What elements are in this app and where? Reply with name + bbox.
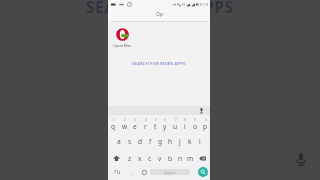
staticText: 6 [164,118,166,122]
button[interactable]: 1 [108,115,119,133]
button[interactable]: 5 [150,115,160,133]
button[interactable]: 7 [170,115,180,133]
staticText: 3 [134,118,136,122]
button[interactable]: c [145,150,155,166]
button[interactable]: h [165,133,175,150]
button[interactable]: 8 [180,115,190,133]
staticText: 8 [184,118,186,122]
button[interactable]: Op [108,8,210,21]
button[interactable]: 3 [130,115,140,133]
button[interactable]: 4 [140,115,150,133]
staticText: b [168,154,173,163]
staticText: h [168,137,173,146]
staticText: n [178,154,183,163]
staticText: a [117,137,121,146]
staticText: g [158,137,163,146]
staticText: k [188,137,192,146]
button[interactable]: k [185,133,195,150]
button[interactable]: Voice input [198,107,205,114]
staticText: 7 [175,118,177,122]
staticText: SEARCH FOR APPS [86,0,234,17]
staticText: ?1ג [114,169,121,175]
button[interactable]: SEARCH FOR MORE APPS [126,57,192,71]
button[interactable]: Emoji [139,165,149,179]
staticText: 5:19 [200,2,208,7]
staticText: 1 [113,118,115,122]
button[interactable]: ?1ג [108,165,127,179]
staticText: y [163,122,167,131]
button[interactable] [116,28,129,41]
staticText: u [173,122,178,131]
staticText: 5 [155,118,157,122]
button[interactable]: 0 [200,115,210,133]
button[interactable]: s [124,133,135,150]
button[interactable]: v [155,150,165,166]
button[interactable]: Backspace [195,150,210,166]
staticText: w [122,122,128,131]
button[interactable]: g [155,133,165,150]
staticText: j [179,137,181,146]
staticText: 9 [194,118,196,122]
button[interactable]: Space [150,169,190,175]
button[interactable]: z [124,150,135,166]
staticText: i [184,122,186,131]
button[interactable]: b [165,150,175,166]
staticText: o [193,122,197,131]
staticText: English [164,170,176,175]
staticText: c [148,154,152,163]
staticText: l [199,137,201,146]
button[interactable]: f [145,133,155,150]
button[interactable]: l [195,133,205,150]
button[interactable]: d [135,133,145,150]
staticText: d [138,137,143,146]
staticText: 2 [124,118,126,122]
staticText: , [132,169,134,176]
button[interactable]: Search [198,167,208,177]
staticText: p [203,122,208,131]
button[interactable]: j [175,133,185,150]
staticText: s [128,137,132,146]
staticText: r [144,122,147,131]
staticText: 0 [205,118,207,122]
staticText: Opera Mini [113,43,131,48]
staticText: t [154,122,157,131]
staticText: q [111,122,116,131]
staticText: 4 [145,118,147,122]
button[interactable]: Shift [108,150,124,166]
button[interactable]: Microphone [292,150,310,168]
button[interactable]: a [113,133,124,150]
staticText: x [138,154,142,163]
button[interactable]: , [127,165,139,179]
staticText: z [128,154,132,163]
button[interactable]: x [135,150,145,166]
button[interactable]: 6 [160,115,170,133]
staticText: e [133,122,137,131]
staticText: f [149,137,152,146]
staticText: m [187,154,194,163]
staticText: SEARCH FOR MORE APPS [132,61,186,67]
button[interactable]: 9 [190,115,200,133]
staticText: v [158,154,162,163]
button[interactable]: n [175,150,185,166]
button[interactable]: m [185,150,195,166]
staticText: Op [156,11,163,18]
button[interactable]: 2 [119,115,130,133]
